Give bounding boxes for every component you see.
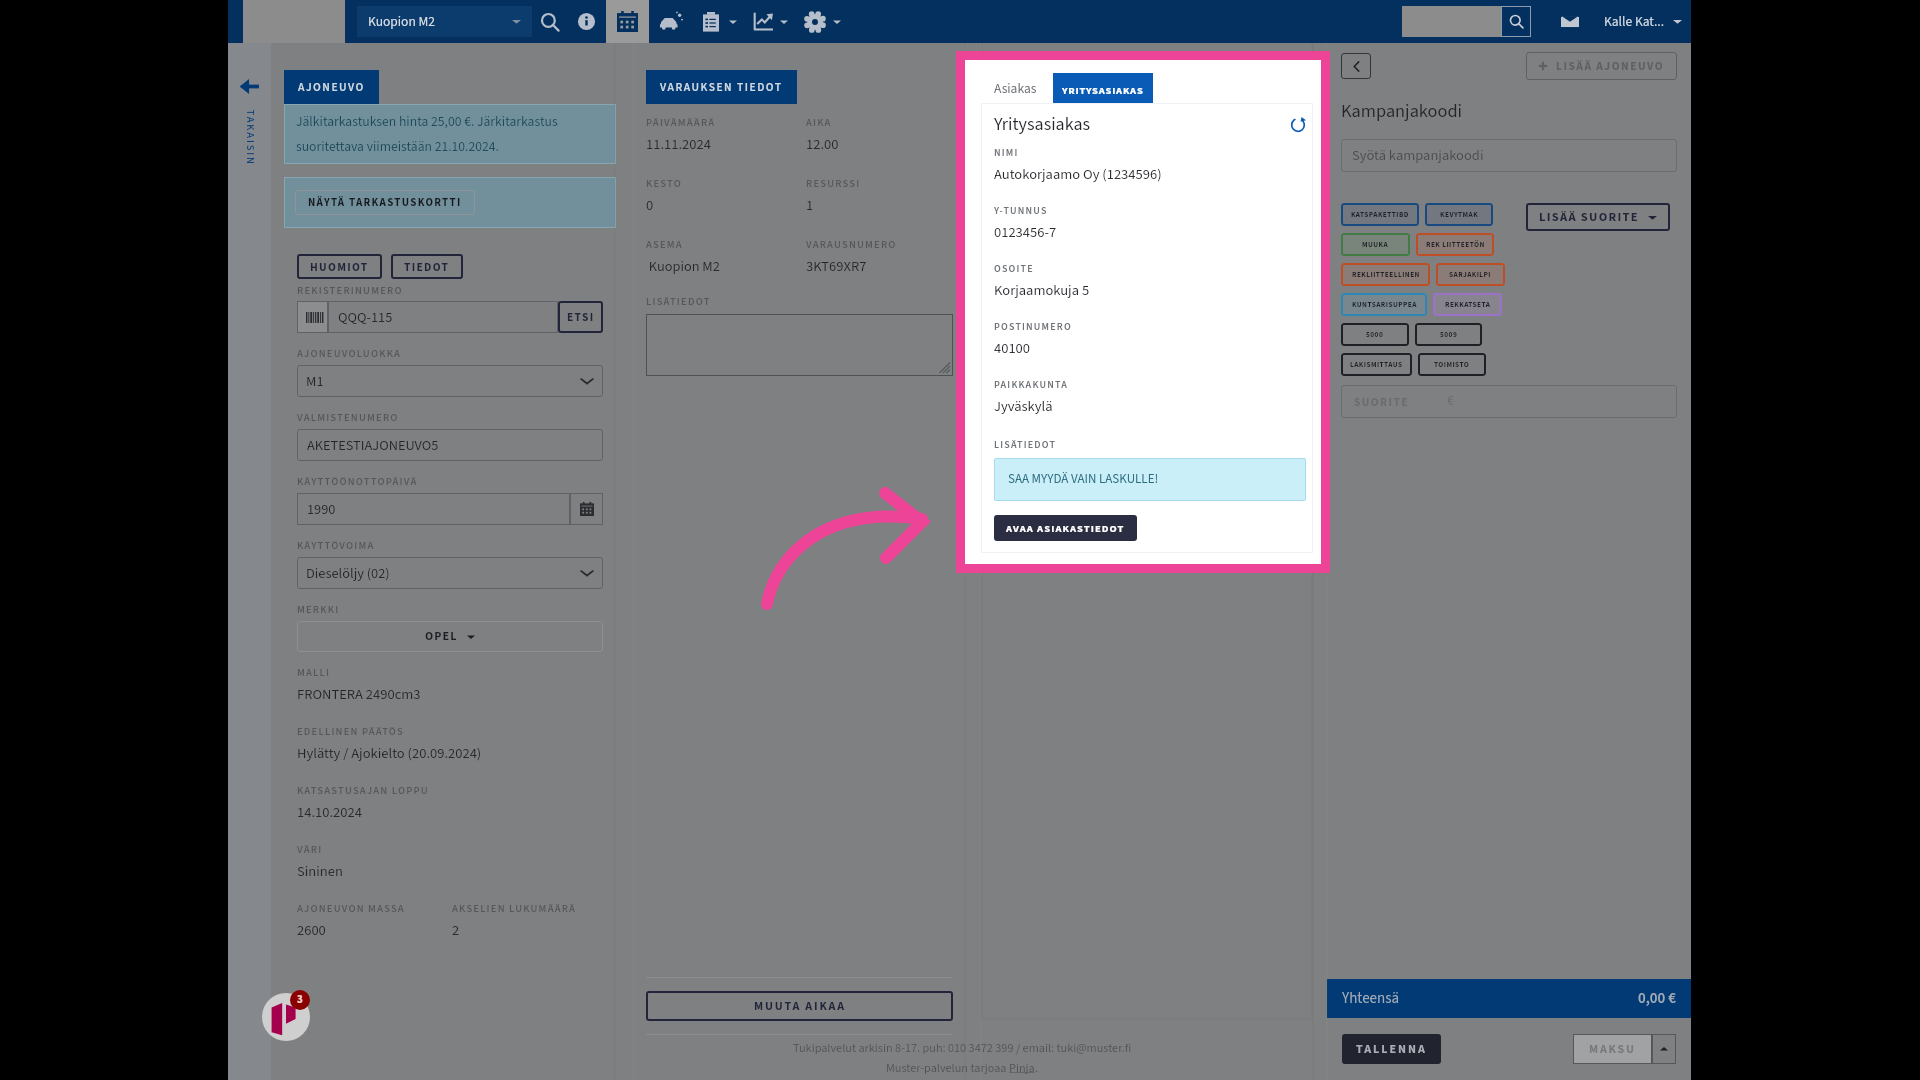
button[interactable]: Takaisin — [228, 43, 271, 1080]
staticText: 1990 — [307, 499, 336, 519]
button[interactable]: Tasks — [692, 0, 744, 43]
staticText: 11.11.2024 — [646, 134, 711, 155]
button[interactable]: Settings — [795, 0, 848, 43]
staticText: Yritysasiakas — [994, 112, 1091, 138]
button[interactable]: 5000 — [1341, 323, 1409, 346]
button[interactable]: Vehicle — [649, 0, 692, 43]
button[interactable]: REKKATSETA — [1433, 293, 1502, 316]
button[interactable]: VARAUKSEN TIEDOT — [646, 70, 797, 104]
staticText: Asiakas — [994, 79, 1037, 98]
button[interactable]: QQQ-115 — [328, 301, 558, 333]
staticText: FRONTERA 2490cm3 — [297, 684, 421, 705]
button[interactable]: LISÄÄ SUORITE — [1526, 203, 1670, 231]
staticText: REKISTERINUMERO — [297, 283, 403, 298]
staticText: MAKSU — [1589, 1041, 1636, 1058]
staticText: REK LIITTEETÖN — [1426, 240, 1485, 250]
button[interactable]: AJONEUVO — [284, 70, 379, 104]
button[interactable]: KUNTSARISUPPEA — [1341, 293, 1427, 316]
button[interactable]: AKETESTIAJONEUVO5 — [297, 429, 603, 461]
staticText: Tukipalvelut arkisin 8-17. puh: 010 3472… — [793, 1040, 1132, 1057]
button[interactable]: 1990 — [297, 493, 570, 525]
button[interactable]: Dieselöljy (02) — [297, 557, 603, 589]
staticText: MUUKA — [1362, 240, 1389, 250]
button[interactable]: 5009 — [1415, 323, 1482, 346]
button[interactable]: MUUTA AIKAA — [646, 991, 953, 1021]
staticText: KESTO — [646, 176, 682, 191]
staticText: Pinja — [1009, 1060, 1035, 1077]
button[interactable]: Syötä kampanjakoodi — [1341, 139, 1677, 172]
staticText: Kuopion M2 — [646, 256, 720, 276]
staticText: VALMISTENUMERO — [297, 410, 399, 425]
staticText: LISÄTIEDOT — [646, 294, 711, 309]
staticText: NÄYTÄ TARKASTUSKORTTI — [308, 195, 462, 211]
button[interactable]: HUOMIOT — [297, 254, 382, 279]
button[interactable]: LAKISMITTAUS — [1341, 353, 1412, 376]
button[interactable]: Messages — [1558, 10, 1582, 34]
staticText: 3 — [297, 992, 303, 1008]
staticText: LAKISMITTAUS — [1350, 360, 1403, 370]
button[interactable]: Info — [567, 0, 606, 43]
button[interactable]: TALLENNA — [1342, 1034, 1441, 1064]
button[interactable]: AVAA ASIAKASTIEDOT — [994, 515, 1137, 541]
button[interactable]: More payment options — [1652, 1034, 1676, 1064]
button[interactable]: Asiakas — [985, 70, 1046, 107]
button[interactable]: Kalle Kat... — [1604, 12, 1682, 31]
button[interactable]: NÄYTÄ TARKASTUSKORTTI — [295, 190, 475, 215]
button[interactable]: YRITYSASIAKAS — [1053, 73, 1153, 107]
button[interactable]: LISÄÄ AJONEUVO — [1526, 52, 1677, 80]
staticText: RESURSSI — [806, 176, 861, 191]
staticText: 1 — [806, 195, 814, 216]
staticText: PÄIVÄMÄÄRÄ — [646, 115, 716, 130]
staticText: VÄRI — [297, 842, 323, 857]
button[interactable]: MUUKA — [1341, 233, 1410, 256]
staticText: 2600 — [297, 920, 326, 941]
button[interactable] — [646, 314, 953, 376]
staticText: HUOMIOT — [310, 259, 369, 275]
staticText: VARAUKSEN TIEDOT — [660, 79, 783, 95]
staticText: Jyväskylä — [994, 396, 1053, 417]
staticText: AJONEUVON MASSA — [297, 901, 405, 916]
button[interactable]: KATSPAKETTIBD — [1341, 203, 1419, 226]
staticText: ASEMA — [646, 237, 683, 252]
staticText: Yhteensä — [1342, 988, 1400, 1009]
button[interactable]: ETSI — [558, 301, 603, 333]
staticText: AKSELIEN LUKUMÄÄRÄ — [452, 901, 577, 916]
staticText: 5009 — [1440, 330, 1458, 340]
button[interactable]: KEVYTMAK — [1425, 203, 1493, 226]
staticText: 0,00 € — [1638, 988, 1676, 1009]
button[interactable]: TOIMISTO — [1418, 353, 1486, 376]
staticText: SARJAKILPI — [1449, 270, 1492, 280]
button[interactable]: Search — [1501, 6, 1531, 37]
staticText: REKKATSETA — [1445, 300, 1491, 310]
staticText: Jälkitarkastuksen hinta 25,00 €. Järkita… — [296, 112, 604, 156]
button[interactable]: SARJAKILPI — [1436, 263, 1505, 286]
staticText: M1 — [306, 371, 324, 391]
button[interactable]: TIEDOT — [391, 254, 463, 279]
staticText: Kuopion M2 — [368, 12, 436, 31]
staticText: Kalle Kat... — [1604, 12, 1665, 31]
staticText: PAIKKAKUNTA — [994, 378, 1068, 392]
button[interactable]: Search — [532, 0, 567, 43]
button[interactable]: Back — [1341, 53, 1371, 79]
button[interactable]: Chat — [262, 993, 310, 1041]
button[interactable]: MAKSU — [1573, 1034, 1652, 1064]
staticText: . — [1035, 1060, 1039, 1077]
button[interactable]: OPEL — [297, 621, 603, 652]
staticText: 40100 — [994, 338, 1031, 359]
button[interactable]: Reports — [744, 0, 795, 43]
staticText: LISÄTIEDOT — [994, 438, 1057, 452]
staticText: KÄYTTÖVOIMA — [297, 538, 375, 553]
staticText: REKLIITTEELLINEN — [1352, 270, 1420, 280]
staticText: TOIMISTO — [1434, 360, 1470, 370]
staticText: TIEDOT — [404, 259, 450, 275]
button[interactable]: Calendar — [606, 0, 649, 43]
button[interactable]: Refresh — [1290, 117, 1306, 133]
staticText: AKETESTIAJONEUVO5 — [307, 435, 439, 455]
button[interactable]: REK LIITTEETÖN — [1416, 233, 1494, 256]
button[interactable]: Kuopion M2 — [357, 6, 532, 37]
button[interactable]: M1 — [297, 365, 603, 397]
button[interactable]: REKLIITTEELLINEN — [1341, 263, 1430, 286]
staticText: MALLI — [297, 665, 331, 680]
button[interactable]: Pick date — [570, 493, 603, 525]
